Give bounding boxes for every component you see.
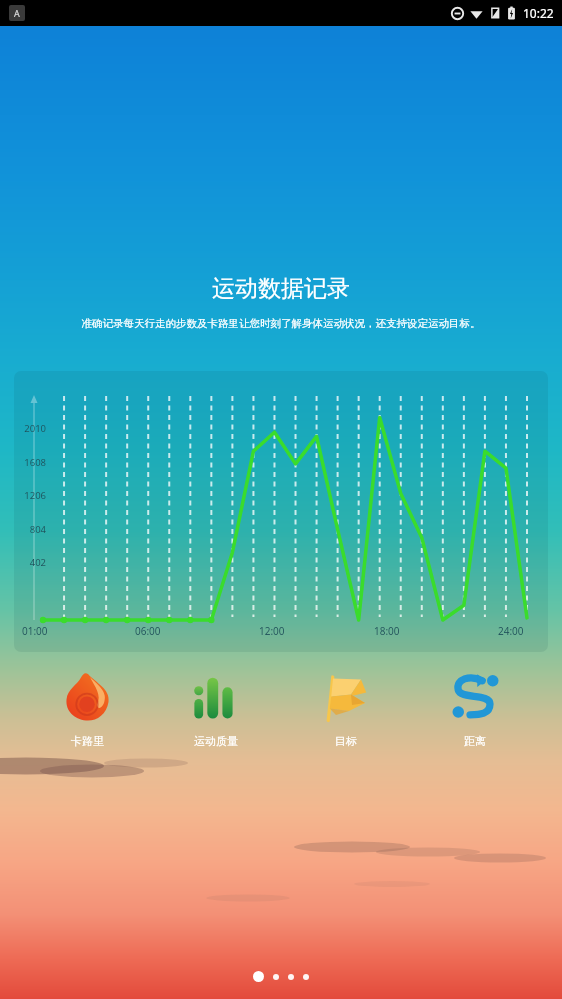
button[interactable]: Page 2	[273, 974, 279, 980]
other: Activity quality	[191, 672, 241, 722]
staticText: 运动质量	[194, 734, 238, 748]
other: Goal	[321, 672, 371, 722]
staticText: 距离	[464, 734, 486, 748]
button[interactable]: Page 1	[253, 971, 264, 982]
staticText: 804	[16, 523, 46, 536]
staticText: 24:00	[498, 624, 524, 638]
staticText: 运动数据记录	[0, 274, 562, 303]
staticText: 402	[16, 556, 46, 569]
staticText: 06:00	[135, 624, 161, 638]
staticText: 准确记录每天行走的步数及卡路里让您时刻了解身体运动状况，还支持设定运动目标。	[26, 317, 536, 330]
staticText: 卡路里	[71, 734, 104, 748]
button[interactable]: Daily step chart	[14, 371, 548, 652]
staticText: 10:22	[523, 5, 554, 21]
button[interactable]: Distance	[427, 670, 523, 750]
staticText: 18:00	[374, 624, 400, 638]
staticText: A	[14, 7, 20, 19]
button[interactable]: Page 3	[288, 974, 294, 980]
other: Distance	[450, 672, 500, 722]
staticText: 2010	[16, 422, 46, 435]
button[interactable]: Calories	[39, 670, 135, 750]
staticText: 1206	[16, 489, 46, 502]
button[interactable]: Activity quality	[168, 670, 264, 750]
staticText: 12:00	[259, 624, 285, 638]
other: Calories	[62, 672, 112, 722]
button[interactable]: Goal	[298, 670, 394, 750]
staticText: 目标	[335, 734, 357, 748]
staticText: 1608	[16, 456, 46, 469]
staticText: 01:00	[22, 624, 48, 638]
button[interactable]: Page 4	[303, 974, 309, 980]
